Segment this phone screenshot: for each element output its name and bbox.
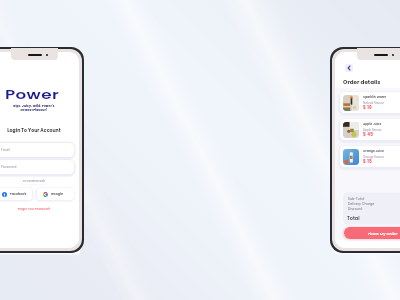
staticText: Facebook bbox=[10, 192, 27, 197]
staticText: Delivery Charge bbox=[348, 202, 375, 207]
button[interactable]: Email bbox=[0, 143, 74, 157]
staticText: Ripe. Juicy. Wild. Power's Newest Flavou… bbox=[0, 104, 79, 112]
staticText: $ 15 bbox=[363, 159, 372, 165]
staticText: Power bbox=[0, 85, 79, 103]
staticText: Or Continue With bbox=[0, 179, 79, 183]
staticText: Apple Juice bbox=[363, 122, 382, 126]
staticText: Sub-Total bbox=[348, 197, 365, 202]
staticText: Orange flavour bbox=[363, 155, 384, 159]
staticText: Place My Order bbox=[368, 231, 398, 236]
button[interactable]: Orange Juice bbox=[340, 146, 400, 167]
button[interactable]: Place My Order bbox=[344, 227, 400, 239]
button[interactable]: Back bbox=[345, 64, 353, 72]
staticText: Order details bbox=[343, 78, 381, 86]
button[interactable]: Password bbox=[0, 160, 74, 174]
staticText: $ 19 bbox=[363, 105, 372, 111]
staticText: Login To Your Account bbox=[0, 127, 79, 133]
button[interactable]: Google bbox=[37, 188, 74, 200]
button[interactable]: Forgot Your Password? bbox=[0, 207, 79, 211]
staticText: Password bbox=[1, 165, 17, 169]
staticText: Discount bbox=[348, 207, 363, 212]
button[interactable]: Sparklin Water bbox=[340, 92, 400, 113]
staticText: Apple flavour bbox=[363, 128, 382, 132]
button[interactable]: Apple Juice bbox=[340, 119, 400, 140]
staticText: Orange Juice bbox=[363, 149, 385, 153]
staticText: Email bbox=[1, 148, 10, 152]
staticText: Sparklin Water bbox=[363, 95, 387, 99]
staticText: Total bbox=[347, 215, 360, 222]
staticText: Natural flavour bbox=[363, 101, 384, 105]
button[interactable]: Facebook bbox=[0, 188, 32, 200]
staticText: $ 45 bbox=[363, 132, 374, 138]
staticText: Google bbox=[51, 192, 63, 197]
